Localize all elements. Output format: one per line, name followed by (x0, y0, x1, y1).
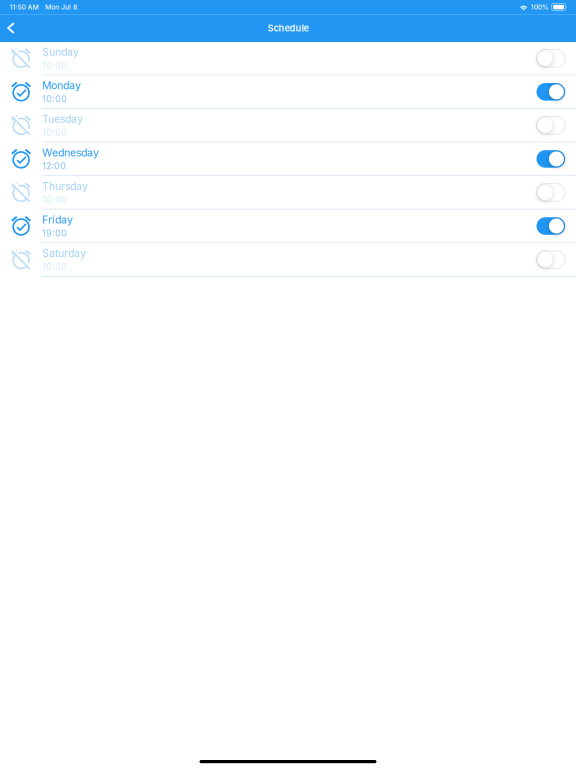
button[interactable]: Sunday (0, 42, 576, 75)
staticText: Friday (42, 213, 73, 226)
staticText: 10:00 (42, 194, 67, 205)
staticText: Sunday (42, 46, 79, 58)
button[interactable]: Saturday (0, 243, 576, 277)
staticText: 10:00 (42, 94, 67, 104)
button[interactable]: Wednesday (0, 143, 576, 176)
staticText: Wednesday (42, 146, 99, 159)
button[interactable]: Tuesday (0, 109, 576, 143)
staticText: 12:00 (42, 161, 66, 171)
staticText: 10:00 (42, 261, 67, 272)
staticText: 100% (531, 3, 549, 11)
staticText: Thursday (42, 180, 88, 192)
staticText: Schedule (267, 22, 308, 34)
button[interactable]: Monday (0, 75, 576, 109)
staticText: Monday (42, 79, 81, 92)
staticText: 10:00 (42, 60, 67, 71)
staticText: 10:00 (42, 127, 67, 138)
button[interactable]: Friday (0, 210, 576, 243)
staticText: Tuesday (42, 113, 83, 125)
staticText: 11:50 AM (9, 3, 38, 11)
staticText: Mon Jul 8 (45, 3, 77, 11)
button[interactable]: Back (0, 14, 22, 42)
staticText: 19:00 (42, 228, 67, 239)
staticText: Saturday (42, 247, 86, 260)
button[interactable]: Thursday (0, 176, 576, 210)
